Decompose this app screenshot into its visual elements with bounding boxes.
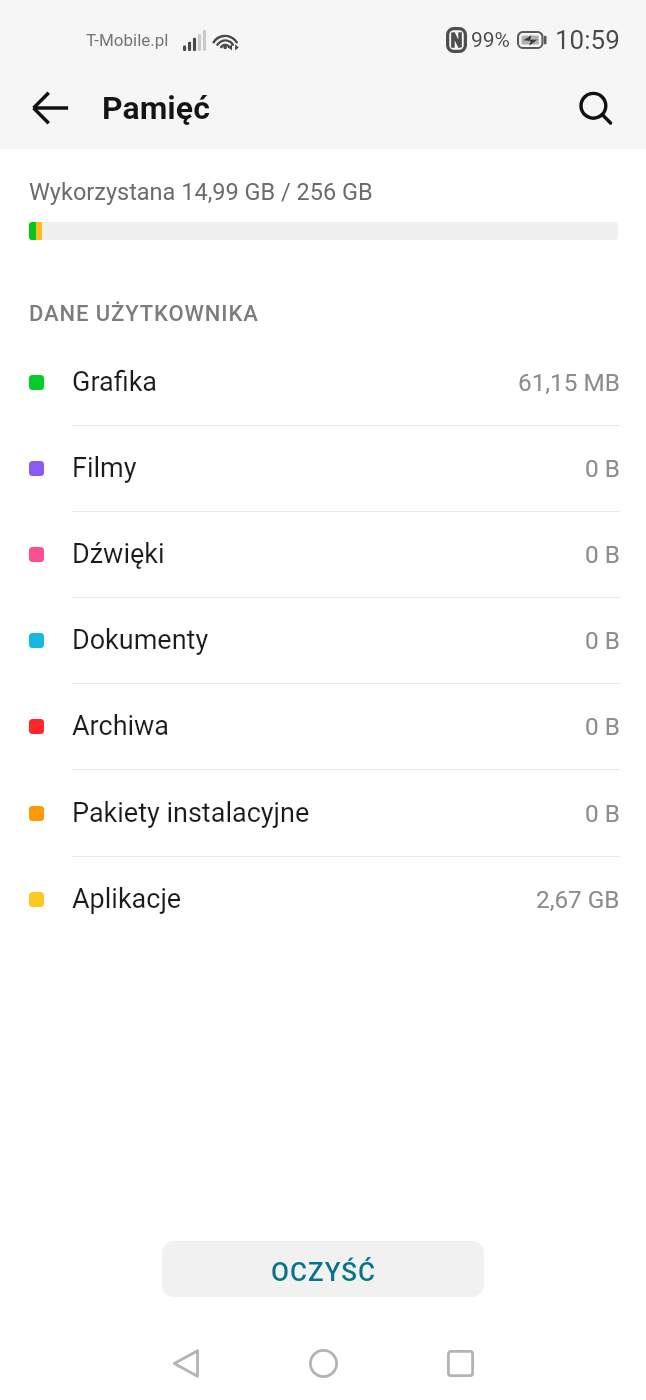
- staticText: 61,15 MB: [518, 368, 620, 396]
- staticText: Archiwa: [72, 710, 170, 742]
- button[interactable]: Recents: [427, 1330, 493, 1396]
- staticText: DANE UŻYTKOWNIKA: [29, 301, 259, 327]
- button[interactable]: Dźwięki: [0, 511, 646, 598]
- button[interactable]: OCZYŚĆ: [162, 1241, 484, 1297]
- staticText: Grafika: [72, 366, 158, 398]
- staticText: 10:59: [555, 25, 620, 55]
- staticText: OCZYŚĆ: [271, 1257, 376, 1287]
- button[interactable]: Back: [153, 1330, 219, 1396]
- button[interactable]: Archiwa: [0, 683, 646, 770]
- staticText: 0 B: [585, 454, 620, 482]
- button[interactable]: Back: [13, 70, 88, 145]
- staticText: Dokumenty: [72, 624, 209, 656]
- staticText: T-Mobile.pl: [86, 30, 169, 50]
- button[interactable]: Search: [559, 73, 634, 148]
- staticText: Filmy: [72, 452, 137, 484]
- button[interactable]: Pakiety instalacyjne: [0, 770, 646, 857]
- staticText: 99%: [471, 28, 510, 53]
- staticText: 0 B: [585, 540, 620, 568]
- staticText: 0 B: [585, 626, 620, 654]
- button[interactable]: Dokumenty: [0, 597, 646, 684]
- staticText: Dźwięki: [72, 538, 165, 570]
- staticText: Aplikacje: [72, 883, 182, 915]
- button[interactable]: Filmy: [0, 425, 646, 512]
- staticText: 2,67 GB: [536, 885, 620, 913]
- button[interactable]: Home: [290, 1330, 356, 1396]
- staticText: Pamięć: [102, 89, 210, 127]
- staticText: Wykorzystana 14,99 GB / 256 GB: [29, 178, 373, 206]
- staticText: 0 B: [585, 799, 620, 827]
- button[interactable]: Aplikacje: [0, 856, 646, 942]
- button[interactable]: Grafika: [0, 339, 646, 426]
- staticText: 0 B: [585, 712, 620, 740]
- staticText: Pakiety instalacyjne: [72, 797, 310, 829]
